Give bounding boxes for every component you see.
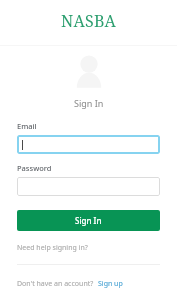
staticText: Need help signing in? xyxy=(17,243,88,253)
staticText: Don't have an account? xyxy=(17,279,94,289)
staticText: NASBA xyxy=(61,10,117,32)
staticText: Sign In xyxy=(75,215,102,226)
button[interactable] xyxy=(17,177,160,196)
button[interactable] xyxy=(17,135,160,154)
other: User avatar xyxy=(72,54,106,90)
staticText: Sign up xyxy=(98,279,123,289)
staticText: Email xyxy=(17,121,37,131)
button[interactable]: Need help signing in? xyxy=(17,243,88,253)
button[interactable]: Sign In xyxy=(17,210,160,231)
staticText: Sign In xyxy=(74,97,104,109)
button[interactable]: Sign up xyxy=(98,279,123,289)
staticText: Password xyxy=(17,163,52,173)
